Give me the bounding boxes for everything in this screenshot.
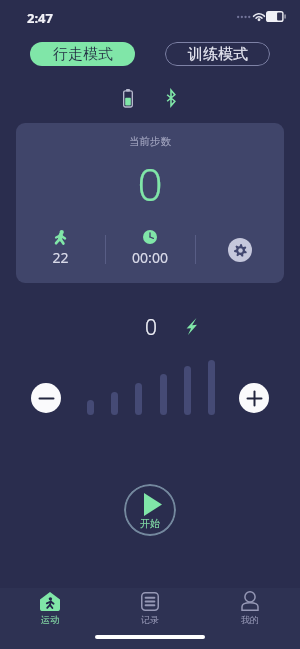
button[interactable]: Decrease [31,383,61,413]
button[interactable]: 记录 [100,590,200,625]
staticText: 运动 [41,614,59,625]
button[interactable]: 训练模式 [165,42,270,66]
other: Bluetooth [165,89,177,107]
staticText: 我的 [241,614,259,625]
staticText: 0 [144,313,158,342]
staticText: 训练模式 [188,45,248,64]
button[interactable]: Settings [228,238,252,262]
staticText: 00:00 [132,248,168,267]
staticText: 22 [52,248,69,267]
staticText: 当前步数 [129,135,171,148]
button[interactable]: 我的 [200,590,300,625]
button[interactable]: 00:00 [120,230,180,267]
button[interactable]: 运动 [0,590,100,625]
button[interactable]: 行走模式 [30,42,135,66]
staticText: 开始 [140,517,160,530]
button[interactable]: 22 [40,230,80,267]
other: Battery [122,89,134,107]
staticText: 2:47 [27,9,53,27]
staticText: 0 [137,154,163,214]
staticText: 行走模式 [53,45,113,64]
button[interactable]: Increase [239,383,269,413]
staticText: 记录 [141,614,159,625]
button[interactable]: 开始 [124,484,176,536]
